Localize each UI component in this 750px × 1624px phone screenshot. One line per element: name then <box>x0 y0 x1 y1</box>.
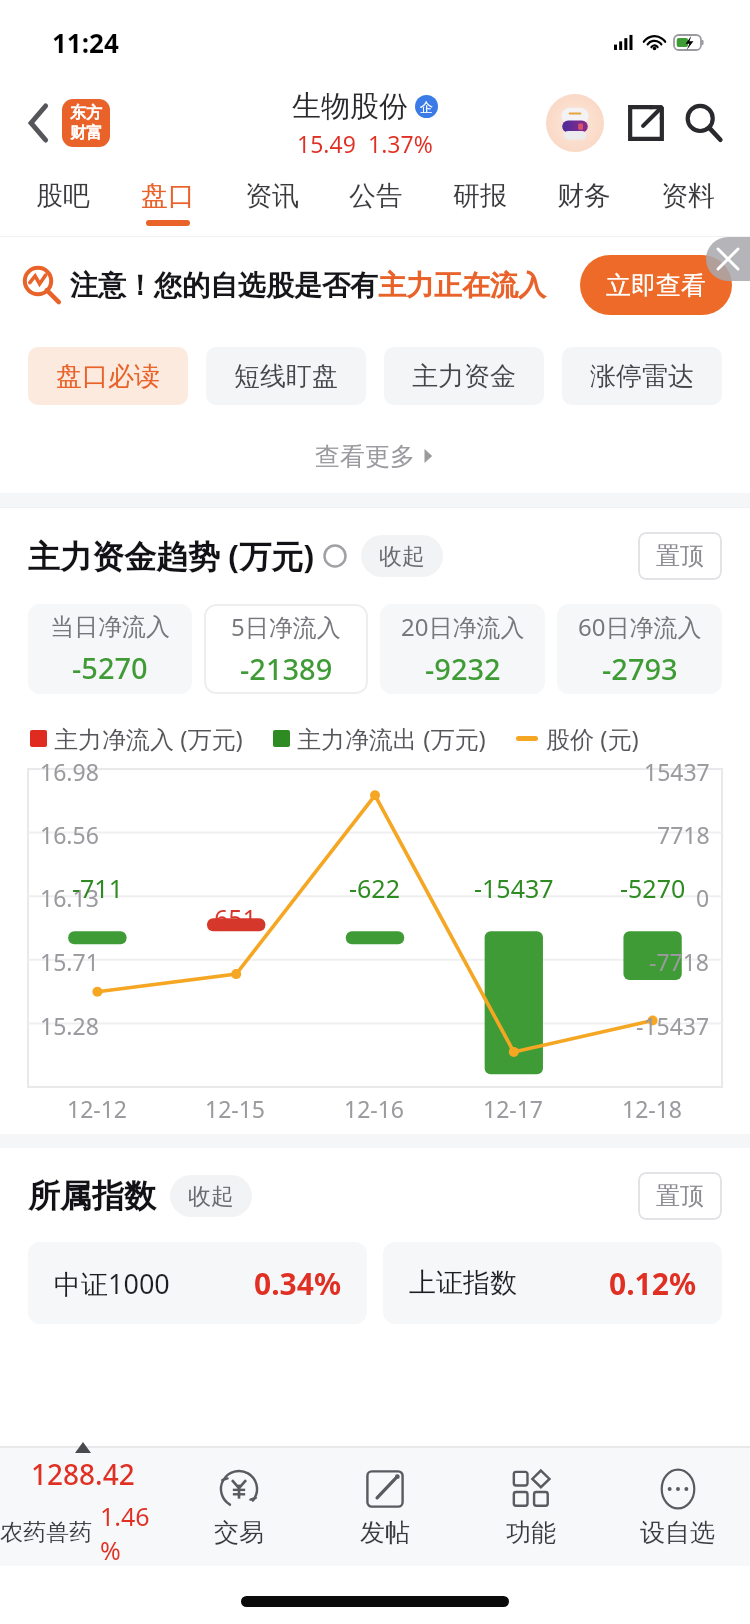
staticText: -7718 <box>649 946 710 977</box>
staticText: 置顶 <box>656 541 704 571</box>
button[interactable]: 主力资金 <box>384 347 544 405</box>
button[interactable]: 1288.42 <box>0 1448 166 1566</box>
staticText: 当日净流入 <box>50 612 170 642</box>
button[interactable]: 盘口必读 <box>28 347 188 405</box>
staticText: 研报 <box>453 179 507 213</box>
staticText: 5日净流入 <box>231 610 341 643</box>
staticText: 651 <box>214 901 257 935</box>
button[interactable]: 交易 <box>166 1448 312 1566</box>
staticText: 16.98 <box>40 756 99 787</box>
staticText: 16.13 <box>40 882 99 913</box>
staticText: 资料 <box>661 179 715 213</box>
staticText: 所属指数 <box>28 1176 156 1216</box>
button[interactable]: Back <box>22 100 56 146</box>
staticText: 查看更多 <box>315 441 415 472</box>
button[interactable]: 股吧 <box>10 168 115 236</box>
staticText: 股价 (元) <box>546 722 639 755</box>
button[interactable]: 盘口 <box>115 168 220 236</box>
staticText: 1.46% <box>100 1499 166 1566</box>
button[interactable]: AI assistant <box>546 94 604 152</box>
staticText: 资讯 <box>245 179 299 213</box>
staticText: 收起 <box>379 542 425 571</box>
button[interactable]: Share <box>624 101 668 145</box>
staticText: 15.71 <box>40 946 99 977</box>
staticText: 主力净流出 (万元) <box>297 722 486 755</box>
button[interactable]: Close <box>706 237 750 281</box>
button[interactable]: 60日净流入 <box>557 604 722 694</box>
staticText: 16.56 <box>40 819 99 850</box>
button[interactable]: 设自选 <box>604 1448 750 1566</box>
button[interactable]: 5日净流入 <box>204 604 368 694</box>
button[interactable]: 当日净流入 <box>28 604 192 694</box>
staticText: 功能 <box>506 1517 556 1548</box>
staticText: 生物股份 <box>292 88 408 125</box>
staticText: 1.37% <box>368 128 433 159</box>
staticText: -5270 <box>72 648 148 687</box>
button[interactable]: 查看更多 <box>0 419 750 493</box>
staticText: -5270 <box>620 871 686 905</box>
staticText: 收起 <box>188 1182 234 1211</box>
staticText: 上证指数 <box>409 1266 517 1300</box>
button[interactable]: 收起 <box>170 1175 252 1217</box>
button[interactable]: 功能 <box>458 1448 604 1566</box>
staticText: 11:24 <box>52 25 119 60</box>
staticText: 注意！您的自选股是否有 <box>70 268 378 303</box>
staticText: -622 <box>349 871 400 905</box>
staticText: 公告 <box>349 179 403 213</box>
staticText: 主力资金趋势 (万元) <box>28 534 315 578</box>
staticText: 7718 <box>657 819 710 850</box>
staticText: 盘口必读 <box>56 360 160 393</box>
staticText: 短线盯盘 <box>234 360 338 393</box>
staticText: 财务 <box>557 179 611 213</box>
button[interactable]: 中证1000 <box>28 1242 367 1324</box>
staticText: 主力资金 <box>412 360 516 393</box>
staticText: 12-17 <box>483 1093 544 1124</box>
staticText: 发帖 <box>360 1517 410 1548</box>
button[interactable]: 短线盯盘 <box>206 347 366 405</box>
button[interactable]: 立即查看 <box>580 255 732 315</box>
button[interactable]: 资讯 <box>220 168 324 236</box>
staticText: 0.34% <box>254 1263 341 1304</box>
staticText: 0.12% <box>609 1263 696 1304</box>
button[interactable]: 涨停雷达 <box>562 347 722 405</box>
staticText: 财富 <box>70 123 102 143</box>
staticText: 15437 <box>644 756 710 787</box>
staticText: 盘口 <box>141 179 195 213</box>
staticText: -15437 <box>636 1010 710 1041</box>
button[interactable]: 20日净流入 <box>380 604 545 694</box>
button[interactable]: 上证指数 <box>383 1242 722 1324</box>
button[interactable]: East Money <box>62 99 110 147</box>
button[interactable]: 财务 <box>532 168 636 236</box>
button[interactable]: 公告 <box>324 168 428 236</box>
staticText: 15.28 <box>40 1010 99 1041</box>
button[interactable]: 置顶 <box>638 532 722 580</box>
staticText: -9232 <box>425 649 501 688</box>
staticText: 设自选 <box>640 1517 715 1548</box>
staticText: 立即查看 <box>606 270 706 301</box>
staticText: 股吧 <box>36 179 90 213</box>
button[interactable]: 研报 <box>428 168 532 236</box>
button[interactable]: 资料 <box>636 168 740 236</box>
staticText: 12-12 <box>67 1093 128 1124</box>
staticText: 12-18 <box>622 1093 683 1124</box>
staticText: 中证1000 <box>54 1265 170 1302</box>
button[interactable]: Search <box>680 99 728 147</box>
button[interactable]: 发帖 <box>312 1448 458 1566</box>
staticText: 1288.42 <box>31 1455 135 1493</box>
staticText: 15.49 <box>297 128 356 159</box>
button[interactable]: 置顶 <box>638 1172 722 1220</box>
staticText: 交易 <box>214 1517 264 1548</box>
button[interactable]: Help <box>323 544 347 568</box>
staticText: 60日净流入 <box>578 610 702 643</box>
staticText: 20日净流入 <box>401 610 525 643</box>
staticText: 农药兽药 <box>0 1518 92 1547</box>
staticText: 企 <box>420 99 433 115</box>
staticText: 主力净流入 (万元) <box>54 722 243 755</box>
staticText: 置顶 <box>656 1181 704 1211</box>
staticText: 主力正在流入 <box>378 268 546 303</box>
staticText: -21389 <box>240 649 333 688</box>
button[interactable]: 收起 <box>361 535 443 577</box>
button[interactable]: 注意！您的自选股是否有 <box>22 237 732 333</box>
staticText: -15437 <box>474 871 554 905</box>
staticText: 涨停雷达 <box>590 360 694 393</box>
